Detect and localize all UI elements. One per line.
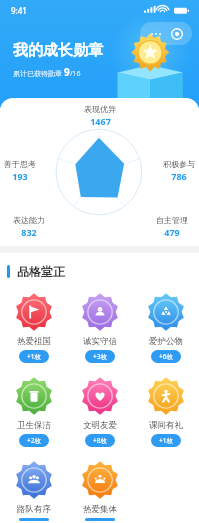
staticText: +2枚	[27, 436, 41, 445]
button[interactable]: 自主管理	[156, 215, 188, 238]
staticText: 9:41	[11, 5, 27, 16]
staticText: 表现优异	[84, 104, 116, 114]
button[interactable]: 课间有礼	[146, 374, 186, 449]
staticText: +6枚	[159, 352, 173, 361]
staticText: 479	[164, 226, 180, 238]
staticText: /16	[70, 69, 81, 79]
button[interactable]: 文明友爱	[80, 374, 120, 449]
button[interactable]: Close	[169, 26, 184, 41]
staticText: 积极参与	[163, 159, 195, 169]
staticText: +1枚	[159, 436, 173, 445]
button[interactable]: 卫生保洁	[14, 374, 54, 449]
staticText: 爱护公物	[149, 336, 183, 347]
button[interactable]: More options	[148, 26, 163, 41]
staticText: +1枚	[27, 352, 41, 361]
staticText: 1467	[90, 115, 111, 127]
staticText: 品格堂正	[17, 264, 65, 279]
button[interactable]: 热爱集体	[80, 458, 120, 523]
staticText: 我的成长勋章	[13, 41, 103, 60]
staticText: +8枚	[93, 436, 107, 445]
staticText: 善于思考	[4, 159, 36, 169]
button[interactable]: 表现优异	[84, 104, 116, 127]
staticText: 路队有序	[17, 504, 51, 515]
button[interactable]: 表达能力	[13, 215, 45, 238]
button[interactable]: 诚实守信	[80, 290, 120, 365]
button[interactable]: 爱护公物	[146, 290, 186, 365]
staticText: 自主管理	[156, 215, 188, 225]
staticText: +3枚	[93, 352, 107, 361]
staticText: 课间有礼	[149, 420, 183, 431]
staticText: 诚实守信	[83, 336, 117, 347]
staticText: 表达能力	[13, 215, 45, 225]
staticText: 786	[171, 170, 187, 182]
staticText: 累计已获得勋章	[13, 69, 64, 79]
button[interactable]: 积极参与	[163, 159, 195, 182]
staticText: 832	[21, 226, 37, 238]
button[interactable]: More options	[140, 22, 192, 45]
staticText: 9	[64, 65, 70, 79]
staticText: 文明友爱	[83, 420, 117, 431]
staticText: 卫生保洁	[17, 420, 51, 431]
staticText: 193	[12, 170, 28, 182]
button[interactable]: 善于思考	[4, 159, 36, 182]
staticText: 热爱集体	[83, 504, 117, 515]
staticText: 热爱祖国	[17, 336, 51, 347]
button[interactable]: 热爱祖国	[14, 290, 54, 365]
button[interactable]: 路队有序	[14, 458, 54, 523]
